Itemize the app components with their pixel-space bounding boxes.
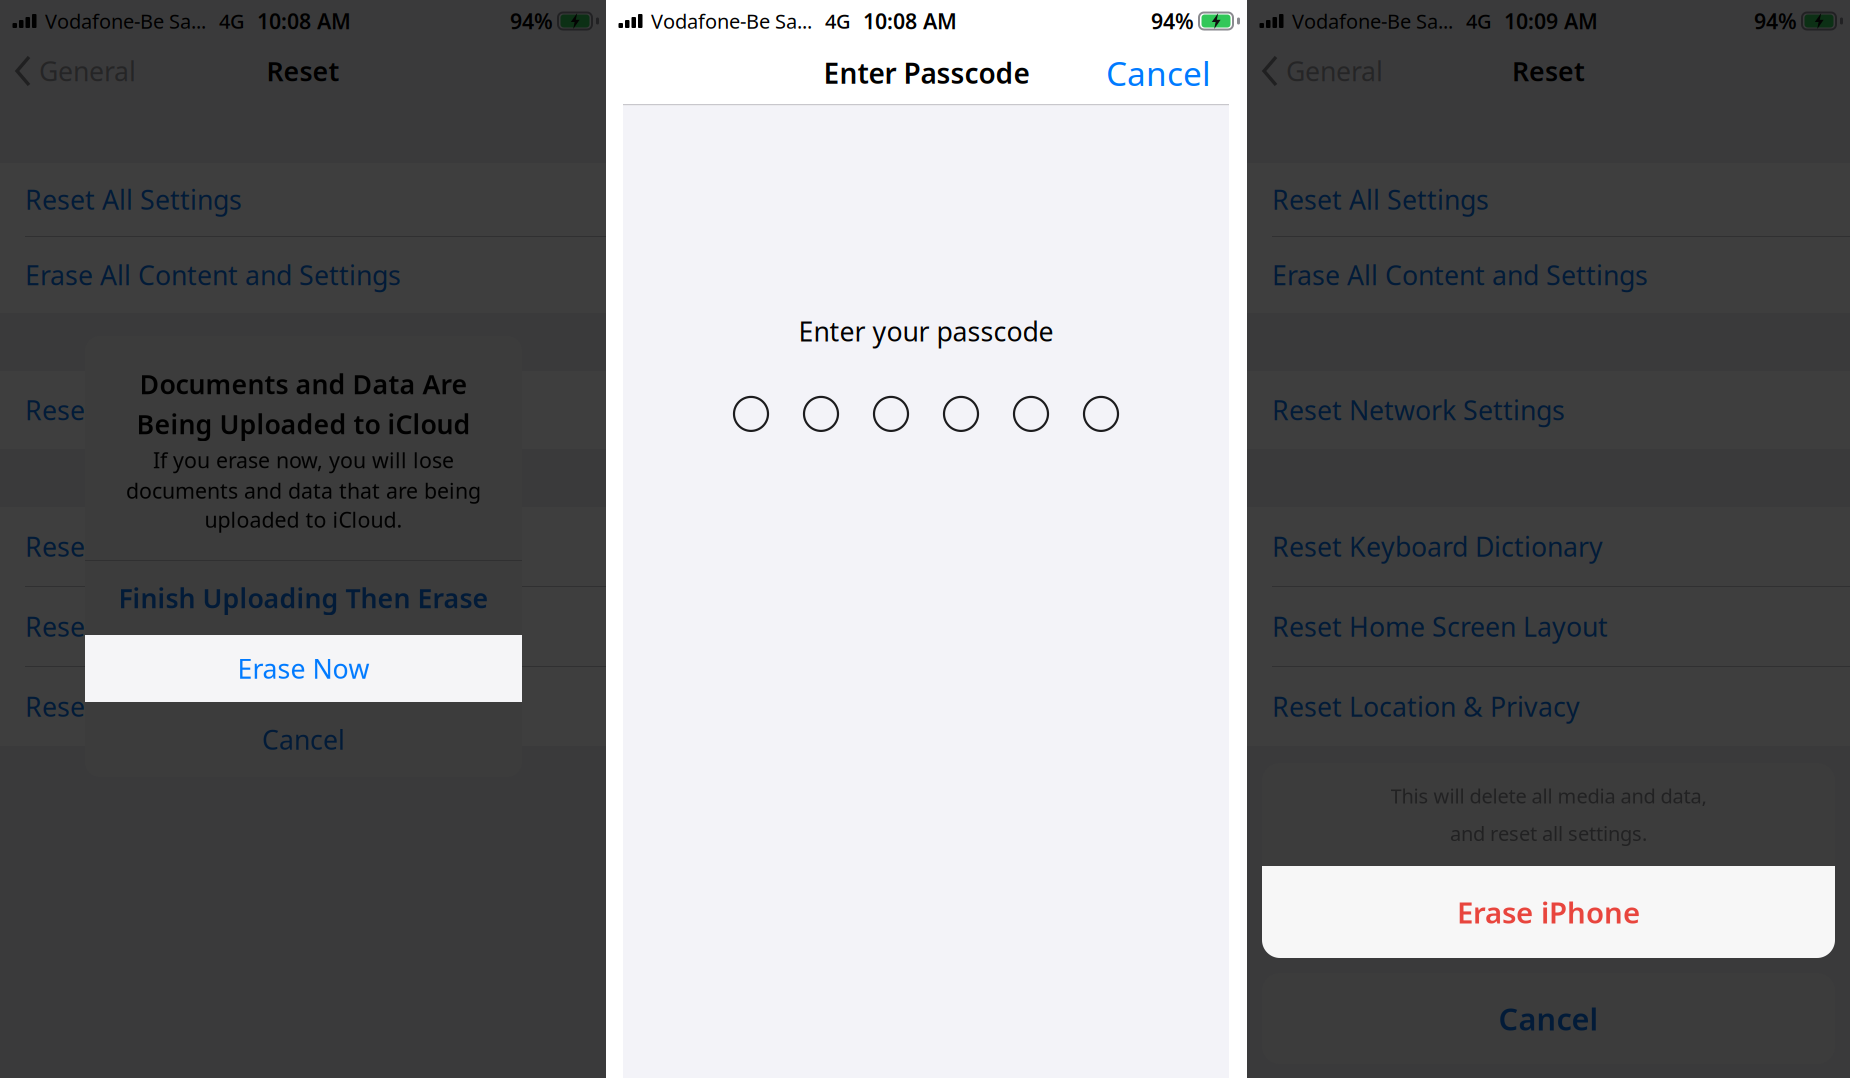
button[interactable]: Cancel	[1262, 973, 1835, 1064]
staticText: and reset all settings.	[1450, 820, 1647, 847]
staticText: 94%	[1754, 7, 1797, 35]
staticText: 10:09 AM	[1504, 7, 1598, 35]
button[interactable]: Reset All Settings	[0, 163, 606, 236]
button[interactable]: Reset Location & Privacy	[0, 667, 606, 746]
button[interactable]: Cancel	[85, 702, 522, 777]
staticText: Reset Location & Privacy	[25, 689, 333, 724]
button[interactable]: Erase Now	[85, 635, 522, 702]
button[interactable]: Erase All Content and Settings	[1247, 237, 1850, 313]
staticText: Reset Home Screen Layout	[1272, 609, 1608, 644]
staticText: documents and data that are being	[126, 476, 481, 505]
staticText: Vodafone-Be Sa...	[45, 8, 206, 34]
staticText: Reset	[1512, 53, 1585, 89]
button[interactable]: General	[1247, 42, 1395, 100]
staticText: 4G	[825, 8, 851, 34]
staticText: Reset Network Settings	[25, 392, 318, 428]
staticText: Reset Home Screen Layout	[25, 609, 361, 644]
staticText: Reset	[266, 53, 339, 89]
staticText: Reset Keyboard Dictionary	[25, 529, 356, 564]
staticText: If you erase now, you will lose	[153, 446, 454, 474]
button[interactable]: Reset Network Settings	[0, 371, 606, 449]
staticText: Erase All Content and Settings	[1272, 257, 1648, 293]
staticText: Vodafone-Be Sa...	[1292, 8, 1453, 34]
staticText: 94%	[510, 7, 553, 35]
staticText: Enter your passcode	[798, 313, 1053, 349]
staticText: Documents and Data Are	[139, 366, 467, 402]
staticText: Reset Network Settings	[1272, 392, 1565, 428]
staticText: Cancel	[262, 722, 345, 757]
staticText: Reset Keyboard Dictionary	[1272, 529, 1603, 564]
button[interactable]: General	[0, 42, 148, 100]
staticText: Finish Uploading Then Erase	[118, 580, 488, 616]
staticText: 4G	[219, 8, 245, 34]
button[interactable]: Erase iPhone	[1262, 866, 1835, 958]
staticText: uploaded to iCloud.	[204, 505, 402, 534]
staticText: General	[1286, 53, 1383, 89]
staticText: Being Uploaded to iCloud	[136, 406, 470, 442]
staticText: 94%	[1151, 7, 1194, 35]
staticText: General	[39, 53, 136, 89]
button[interactable]: Reset All Settings	[1247, 163, 1850, 236]
staticText: This will delete all media and data,	[1390, 782, 1706, 809]
staticText: 10:08 AM	[863, 7, 957, 35]
button[interactable]: Reset Keyboard Dictionary	[1247, 507, 1850, 586]
staticText: 4G	[1466, 8, 1492, 34]
staticText: Reset All Settings	[1272, 182, 1489, 217]
staticText: Vodafone-Be Sa...	[651, 8, 812, 34]
staticText: Cancel	[1498, 998, 1598, 1039]
button[interactable]: Erase All Content and Settings	[0, 237, 606, 313]
staticText: Erase Now	[237, 651, 369, 686]
staticText: Cancel	[1106, 51, 1211, 95]
staticText: Erase iPhone	[1457, 892, 1640, 931]
button[interactable]: Reset Keyboard Dictionary	[0, 507, 606, 586]
button[interactable]: Reset Home Screen Layout	[1247, 587, 1850, 666]
button[interactable]: Cancel	[1086, 43, 1247, 103]
staticText: Reset Location & Privacy	[1272, 689, 1580, 724]
button[interactable]: Reset Location & Privacy	[1247, 667, 1850, 746]
button[interactable]: Finish Uploading Then Erase	[85, 561, 522, 635]
staticText: 10:08 AM	[257, 7, 351, 35]
staticText: Reset All Settings	[25, 182, 242, 217]
button[interactable]: Reset Home Screen Layout	[0, 587, 606, 666]
staticText: Enter Passcode	[823, 54, 1029, 92]
button[interactable]: Reset Network Settings	[1247, 371, 1850, 449]
staticText: Erase All Content and Settings	[25, 257, 401, 293]
